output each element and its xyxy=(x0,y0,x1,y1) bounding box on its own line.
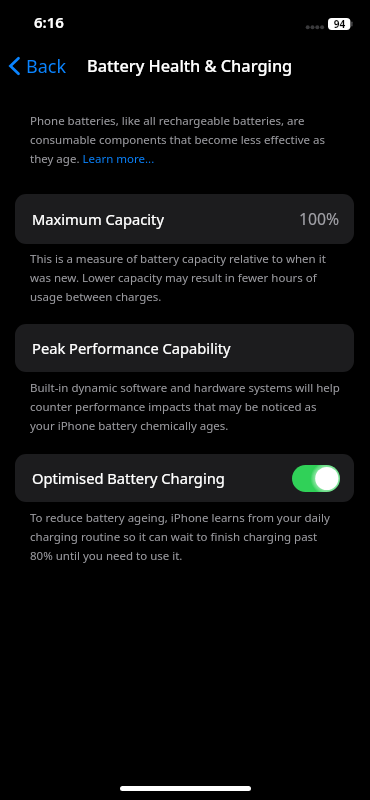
staticText: Battery Health & Charging xyxy=(87,55,293,77)
staticText: Maximum Capacity xyxy=(32,209,164,229)
staticText: 100% xyxy=(299,208,340,230)
button[interactable]: Maximum Capacity xyxy=(15,194,354,244)
button[interactable]: Peak Performance Capability xyxy=(15,324,354,372)
staticText: Back xyxy=(26,54,67,79)
staticText: Built-in dynamic software and hardware s… xyxy=(30,380,344,433)
button[interactable]: Back xyxy=(4,44,97,88)
button[interactable]: Optimised Battery Charging toggle xyxy=(292,465,340,492)
staticText: 6:16 xyxy=(34,12,64,32)
staticText: Optimised Battery Charging xyxy=(32,468,225,488)
staticText: Phone batteries, like all rechargeable b… xyxy=(30,113,344,166)
staticText: 94 xyxy=(328,17,351,29)
staticText: To reduce battery ageing, iPhone learns … xyxy=(30,510,340,563)
staticText: Peak Performance Capability xyxy=(32,338,231,358)
button[interactable]: Optimised Battery Charging xyxy=(15,454,354,502)
staticText: This is a measure of battery capacity re… xyxy=(30,251,344,304)
button[interactable]: Learn more about battery health xyxy=(78,150,159,167)
